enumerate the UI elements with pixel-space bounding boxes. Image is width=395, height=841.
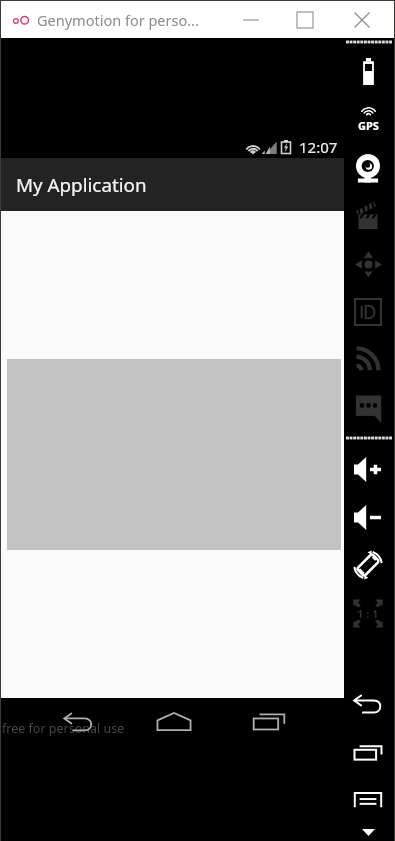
button[interactable]: Rotate screen: [345, 543, 391, 587]
button[interactable]: My Application: [1, 158, 344, 211]
button[interactable]: Network: [345, 338, 391, 378]
button[interactable]: Volume up: [345, 450, 391, 489]
button[interactable]: Camera: [345, 147, 391, 192]
staticText: GPS: [358, 118, 379, 133]
staticText: 12:07: [299, 137, 338, 157]
button[interactable]: Home: [148, 704, 200, 739]
button[interactable]: Zoom 1 to 1: [345, 593, 391, 633]
button[interactable]: Recents: [345, 737, 391, 768]
button[interactable]: Maximize: [278, 1, 332, 38]
button[interactable]: Minimize: [224, 1, 278, 38]
button[interactable]: Menu: [345, 785, 391, 815]
staticText: My Application: [16, 172, 147, 198]
button[interactable]: Recents: [244, 704, 294, 739]
button[interactable]: More: [345, 817, 391, 841]
button[interactable]: Volume down: [345, 498, 391, 537]
staticText: free for personal use: [2, 720, 125, 737]
button[interactable]: Back: [55, 705, 102, 739]
button[interactable]: Messages: [345, 387, 391, 431]
button[interactable]: Close: [335, 1, 389, 38]
button[interactable]: Back: [345, 688, 391, 720]
button[interactable]: Virtual sensors: [345, 243, 391, 286]
staticText: Genymotion for perso...: [37, 10, 199, 30]
button[interactable]: GPS: [345, 102, 391, 138]
staticText: 1 : 1: [357, 606, 379, 621]
button[interactable]: Battery: [345, 51, 391, 92]
button[interactable]: Video recording: [345, 195, 391, 236]
button[interactable]: Identifiers: [345, 291, 391, 333]
